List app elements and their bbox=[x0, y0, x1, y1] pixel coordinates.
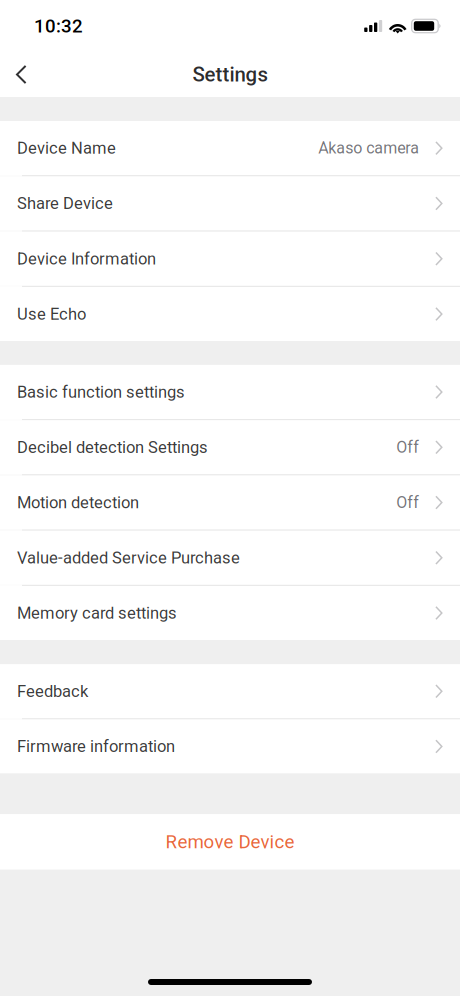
button[interactable]: Memory card settings bbox=[0, 586, 460, 640]
button[interactable]: Decibel detection Settings bbox=[0, 420, 460, 474]
staticText: Motion detection bbox=[17, 493, 139, 512]
staticText: Value-added Service Purchase bbox=[17, 548, 240, 567]
staticText: Firmware information bbox=[17, 737, 175, 756]
button[interactable]: Device Information bbox=[0, 232, 460, 286]
button[interactable]: Feedback bbox=[0, 664, 460, 718]
button[interactable]: Firmware information bbox=[0, 719, 460, 774]
button[interactable]: Back bbox=[0, 52, 43, 97]
button[interactable]: Share Device bbox=[0, 176, 460, 231]
button[interactable]: Basic function settings bbox=[0, 365, 460, 419]
staticText: Feedback bbox=[17, 682, 88, 701]
staticText: Device Information bbox=[17, 249, 156, 268]
staticText: Off bbox=[396, 493, 419, 512]
staticText: Remove Device bbox=[165, 831, 294, 853]
button[interactable]: Device Name bbox=[0, 121, 460, 175]
staticText: 10:32 bbox=[34, 15, 83, 37]
staticText: Memory card settings bbox=[17, 603, 177, 623]
staticText: Akaso camera bbox=[318, 139, 419, 158]
staticText: Use Echo bbox=[17, 304, 86, 324]
staticText: Device Name bbox=[17, 138, 116, 158]
staticText: Basic function settings bbox=[17, 382, 185, 402]
button[interactable]: Value-added Service Purchase bbox=[0, 531, 460, 585]
staticText: Share Device bbox=[17, 194, 113, 213]
staticText: Off bbox=[396, 438, 419, 457]
staticText: Decibel detection Settings bbox=[17, 438, 208, 457]
button[interactable]: Motion detection bbox=[0, 475, 460, 530]
button[interactable]: Use Echo bbox=[0, 287, 460, 341]
staticText: Settings bbox=[192, 62, 267, 86]
button[interactable]: Remove Device bbox=[0, 814, 460, 869]
